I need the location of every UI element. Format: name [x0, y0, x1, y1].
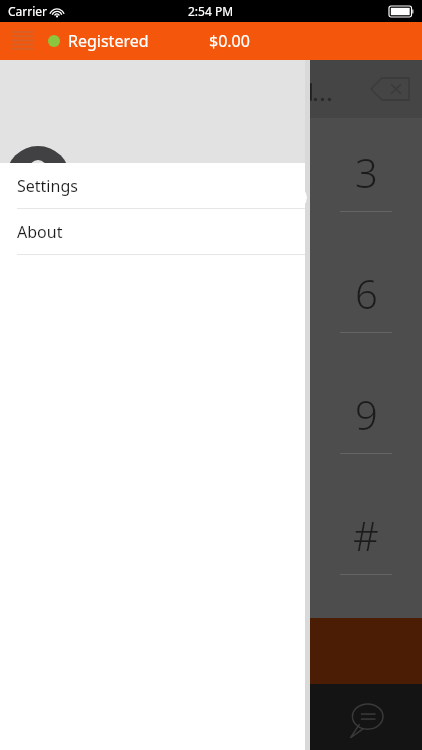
button[interactable]: 6 — [310, 239, 422, 360]
button[interactable]: 3 — [310, 118, 422, 239]
button[interactable]: Menu — [8, 26, 38, 56]
staticText: Registered — [68, 30, 149, 52]
staticText: appdemo2 — [77, 188, 164, 211]
button[interactable]: Backspace — [368, 74, 412, 104]
button[interactable]: # — [310, 481, 422, 602]
button[interactable]: 9 — [310, 360, 422, 481]
staticText: About — [17, 221, 63, 243]
staticText: 9 — [355, 387, 378, 441]
staticText: $0.00 — [209, 30, 250, 52]
button[interactable]: Settings — [0, 163, 305, 208]
staticText: 2:54 PM — [188, 3, 234, 19]
staticText: Settings — [17, 175, 78, 197]
button[interactable]: About — [0, 209, 305, 254]
staticText: # — [353, 508, 379, 562]
staticText: 3 — [355, 145, 378, 199]
button[interactable]: Messages — [343, 698, 389, 744]
staticText: Carrier — [8, 3, 48, 19]
staticText: 6 — [355, 266, 378, 320]
button[interactable]: appdemo2 — [0, 60, 305, 163]
